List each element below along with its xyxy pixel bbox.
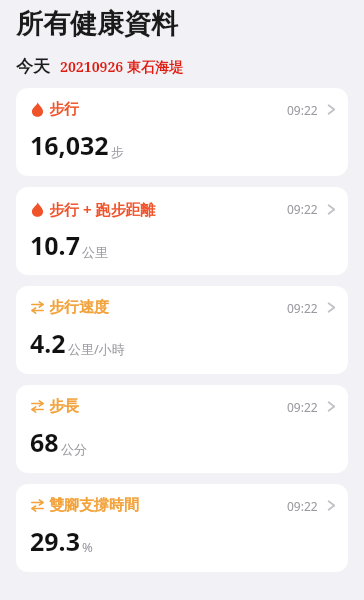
staticText: 09:22 [287,399,318,415]
staticText: 步行速度 [49,298,109,317]
staticText: 步長 [49,397,79,416]
staticText: 步行 + 跑步距離 [49,199,156,219]
button[interactable]: 步長 [16,385,348,473]
staticText: 68 [30,425,59,459]
staticText: 公里/小時 [68,340,125,358]
staticText: 10.7 [30,228,80,262]
staticText: 20210926 東石海堤 [60,57,183,76]
button[interactable]: 步行 [16,88,348,176]
button[interactable]: 步行 + 跑步距離 [16,187,348,275]
staticText: 步 [111,144,124,160]
staticText: 所有健康資料 [16,7,178,41]
staticText: 09:22 [287,201,318,217]
staticText: 09:22 [287,300,318,316]
button[interactable]: 步行速度 [16,286,348,374]
staticText: 09:22 [287,102,318,118]
staticText: 09:22 [287,498,318,514]
staticText: 今天 [16,56,50,77]
staticText: 29.3 [30,524,80,558]
staticText: 公分 [61,441,87,457]
staticText: 公里 [82,244,108,260]
staticText: % [82,538,93,556]
staticText: 雙腳支撐時間 [49,496,139,515]
button[interactable]: 雙腳支撐時間 [16,484,348,572]
staticText: 4.2 [30,326,66,360]
staticText: 16,032 [30,128,109,162]
staticText: 步行 [49,100,79,119]
